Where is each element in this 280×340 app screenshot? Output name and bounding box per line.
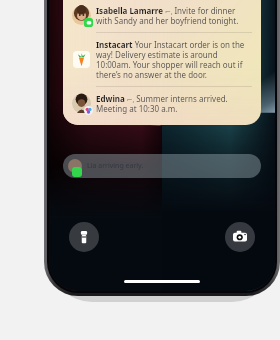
staticText: Isabella Lamarre ⌐, Invite for dinner wi… <box>96 5 252 26</box>
button[interactable]: Instacart Your Instacart order is on the… <box>72 39 252 80</box>
button[interactable]: Camera <box>225 222 255 252</box>
button[interactable]: Lia arriving early. <box>63 154 261 178</box>
button[interactable]: Isabella Lamarre ⌐, Invite for dinner wi… <box>72 5 252 26</box>
staticText: Edwina ⌐, Summer interns arrived. Meetin… <box>96 93 252 114</box>
button[interactable]: Flashlight <box>69 222 99 252</box>
staticText: Instacart Your Instacart order is on the… <box>96 39 252 80</box>
button[interactable]: Edwina ⌐, Summer interns arrived. Meetin… <box>72 93 252 114</box>
button[interactable]: Priority Notifications <box>63 0 261 125</box>
staticText: Lia arriving early. <box>87 161 144 171</box>
